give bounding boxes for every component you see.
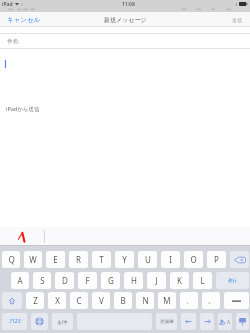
staticText: 次候補 bbox=[160, 319, 174, 325]
staticText: I bbox=[169, 254, 172, 265]
button[interactable]: O bbox=[184, 251, 203, 268]
button[interactable]: T bbox=[92, 251, 111, 268]
button[interactable]: N bbox=[136, 292, 154, 309]
staticText: H bbox=[131, 275, 137, 286]
staticText: D bbox=[62, 275, 68, 286]
staticText: Z bbox=[33, 295, 38, 306]
staticText: 改行 bbox=[228, 278, 237, 284]
button[interactable]: 全/半 bbox=[52, 313, 73, 330]
button[interactable]: G bbox=[101, 272, 120, 289]
staticText: Q bbox=[8, 254, 15, 265]
button[interactable]: H bbox=[124, 272, 143, 289]
button[interactable]: 。 bbox=[202, 292, 220, 309]
button[interactable]: D bbox=[55, 272, 74, 289]
button[interactable]: Globe bbox=[31, 313, 48, 330]
staticText: J bbox=[155, 275, 158, 286]
button[interactable]: B bbox=[114, 292, 132, 309]
button[interactable]: I bbox=[161, 251, 180, 268]
button[interactable]: K bbox=[170, 272, 189, 289]
button[interactable]: J bbox=[147, 272, 166, 289]
staticText: あ bbox=[219, 318, 226, 326]
staticText: Y bbox=[122, 254, 127, 265]
button[interactable]: .?123 bbox=[2, 313, 27, 330]
staticText: O bbox=[190, 254, 197, 265]
button[interactable]: M bbox=[158, 292, 176, 309]
button[interactable]: R bbox=[69, 251, 88, 268]
staticText: キャンセル bbox=[7, 16, 41, 24]
button[interactable]: 、 bbox=[180, 292, 198, 309]
button[interactable]: Hide keyboard bbox=[236, 313, 249, 330]
button[interactable]: Y bbox=[115, 251, 134, 268]
button[interactable]: Z bbox=[26, 292, 44, 309]
staticText: N bbox=[142, 295, 149, 306]
staticText: L bbox=[200, 275, 205, 286]
staticText: G bbox=[108, 275, 114, 286]
staticText: A bbox=[227, 319, 231, 326]
staticText: 11:08 bbox=[122, 1, 135, 8]
staticText: 全/半 bbox=[57, 319, 68, 325]
staticText: 送信 bbox=[232, 17, 242, 23]
staticText: U bbox=[145, 254, 151, 265]
staticText: P bbox=[214, 254, 219, 265]
staticText: iPad bbox=[2, 1, 13, 8]
button[interactable]: E bbox=[46, 251, 65, 268]
button[interactable]: W bbox=[24, 251, 42, 268]
button[interactable]: S bbox=[33, 272, 51, 289]
staticText: 新規メッセージ bbox=[104, 16, 147, 24]
staticText: T bbox=[99, 254, 104, 265]
button[interactable]: X bbox=[48, 292, 66, 309]
staticText: R bbox=[76, 254, 81, 265]
staticText: K bbox=[177, 275, 182, 286]
staticText: B bbox=[120, 295, 126, 306]
staticText: V bbox=[99, 295, 104, 306]
button[interactable]: Backspace bbox=[230, 251, 249, 268]
button[interactable]: Dash bbox=[224, 292, 249, 309]
button[interactable]: U bbox=[138, 251, 157, 268]
button[interactable]: A bbox=[11, 272, 29, 289]
button[interactable]: Move right bbox=[200, 313, 214, 330]
button[interactable]: 改行 bbox=[216, 272, 249, 289]
button[interactable]: Q bbox=[2, 251, 20, 268]
button[interactable]: V bbox=[92, 292, 110, 309]
staticText: 、 bbox=[186, 296, 193, 305]
staticText: E bbox=[53, 254, 58, 265]
staticText: 件名: bbox=[7, 37, 20, 45]
button[interactable]: 次候補 bbox=[156, 313, 177, 330]
button[interactable]: C bbox=[70, 292, 88, 309]
staticText: S bbox=[40, 275, 45, 286]
staticText: C bbox=[76, 295, 82, 306]
button[interactable]: P bbox=[207, 251, 226, 268]
button[interactable]: 送信 bbox=[224, 12, 250, 27]
staticText: W bbox=[29, 254, 37, 265]
staticText: M bbox=[163, 295, 171, 306]
staticText: C bbox=[21, 2, 24, 7]
button[interactable]: Move left bbox=[181, 313, 196, 330]
button[interactable]: F bbox=[78, 272, 97, 289]
button[interactable]: L bbox=[193, 272, 212, 289]
staticText: A bbox=[17, 275, 23, 286]
button[interactable]: Switch input mode bbox=[218, 313, 232, 330]
button[interactable]: Shift bbox=[2, 292, 22, 309]
button[interactable]: キャンセル bbox=[0, 12, 48, 27]
button[interactable]: 件名: bbox=[0, 34, 250, 48]
staticText: .?123 bbox=[8, 318, 21, 325]
staticText: iPadから送信 bbox=[6, 105, 40, 113]
staticText: F bbox=[85, 275, 90, 286]
staticText: 。 bbox=[208, 296, 215, 305]
staticText: X bbox=[55, 295, 60, 306]
